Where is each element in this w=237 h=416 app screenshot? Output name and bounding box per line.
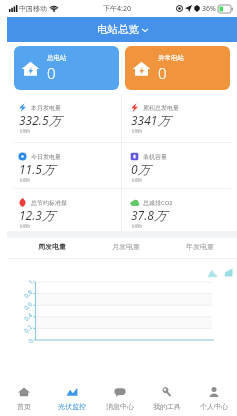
staticText: 3341万: [131, 112, 170, 128]
staticText: 0.8: [22, 288, 34, 300]
button[interactable]: 首页: [0, 382, 48, 416]
staticText: 我的工具: [153, 402, 181, 411]
staticText: 周发电量: [38, 242, 66, 251]
staticText: 本月发电量: [31, 104, 61, 112]
button[interactable]: 我的工具: [143, 382, 190, 416]
staticText: kWh: [20, 128, 31, 135]
staticText: 0: [158, 63, 167, 83]
staticText: 37.8万: [131, 207, 166, 223]
staticText: 11.5万: [19, 161, 54, 177]
staticText: 36%: [202, 4, 216, 14]
button[interactable]: 总节约标准煤: [7, 189, 121, 231]
staticText: 总电站: [47, 54, 67, 62]
staticText: 0.6: [22, 300, 34, 312]
button[interactable]: 个人中心: [190, 382, 237, 416]
button[interactable]: Bar chart: [224, 268, 233, 277]
button[interactable]: 异常电站: [125, 46, 230, 90]
staticText: 累积总发电量: [143, 104, 179, 112]
staticText: 首页: [17, 402, 31, 411]
staticText: 0万: [131, 161, 150, 177]
staticText: kWh: [20, 177, 31, 184]
staticText: 0.2: [22, 323, 34, 335]
staticText: 年发电量: [186, 242, 214, 251]
staticText: 月发电量: [112, 242, 140, 251]
button[interactable]: 消息中心: [96, 382, 143, 416]
staticText: 下午4:20: [103, 4, 131, 14]
button[interactable]: Line chart: [208, 268, 217, 277]
button[interactable]: 本月发电量: [7, 94, 121, 142]
staticText: 电站总览: [97, 23, 139, 36]
staticText: 消息中心: [106, 402, 134, 411]
staticText: 装机容量: [143, 153, 167, 161]
staticText: kWh: [132, 128, 143, 135]
button[interactable]: 月发电量: [89, 238, 163, 255]
staticText: 个人中心: [200, 402, 228, 411]
button[interactable]: 累积总发电量: [122, 94, 237, 142]
button[interactable]: 周发电量: [15, 238, 89, 255]
staticText: 异常电站: [158, 54, 184, 62]
staticText: 0: [27, 337, 35, 345]
button[interactable]: 总减排CO2: [122, 189, 237, 231]
staticText: 332.5万: [19, 112, 61, 128]
button[interactable]: 总电站: [14, 46, 119, 90]
staticText: 中国移动: [19, 4, 47, 13]
staticText: 0.4: [22, 311, 34, 323]
button[interactable]: 年发电量: [163, 238, 237, 255]
staticText: 1: [27, 278, 35, 286]
staticText: kWh: [132, 223, 143, 230]
staticText: kWh: [132, 177, 143, 184]
button[interactable]: 电站总览: [91, 20, 154, 39]
staticText: 今日发电量: [31, 153, 61, 161]
staticText: 总减排CO2: [143, 199, 173, 207]
staticText: 总节约标准煤: [31, 199, 67, 207]
button[interactable]: 今日发电量: [7, 143, 121, 188]
staticText: 12.3万: [19, 207, 54, 223]
staticText: 光伏监控: [58, 402, 86, 411]
button[interactable]: 装机容量: [122, 143, 237, 188]
staticText: kWh: [20, 223, 31, 230]
staticText: 0: [47, 63, 56, 83]
button[interactable]: 光伏监控: [48, 382, 96, 416]
